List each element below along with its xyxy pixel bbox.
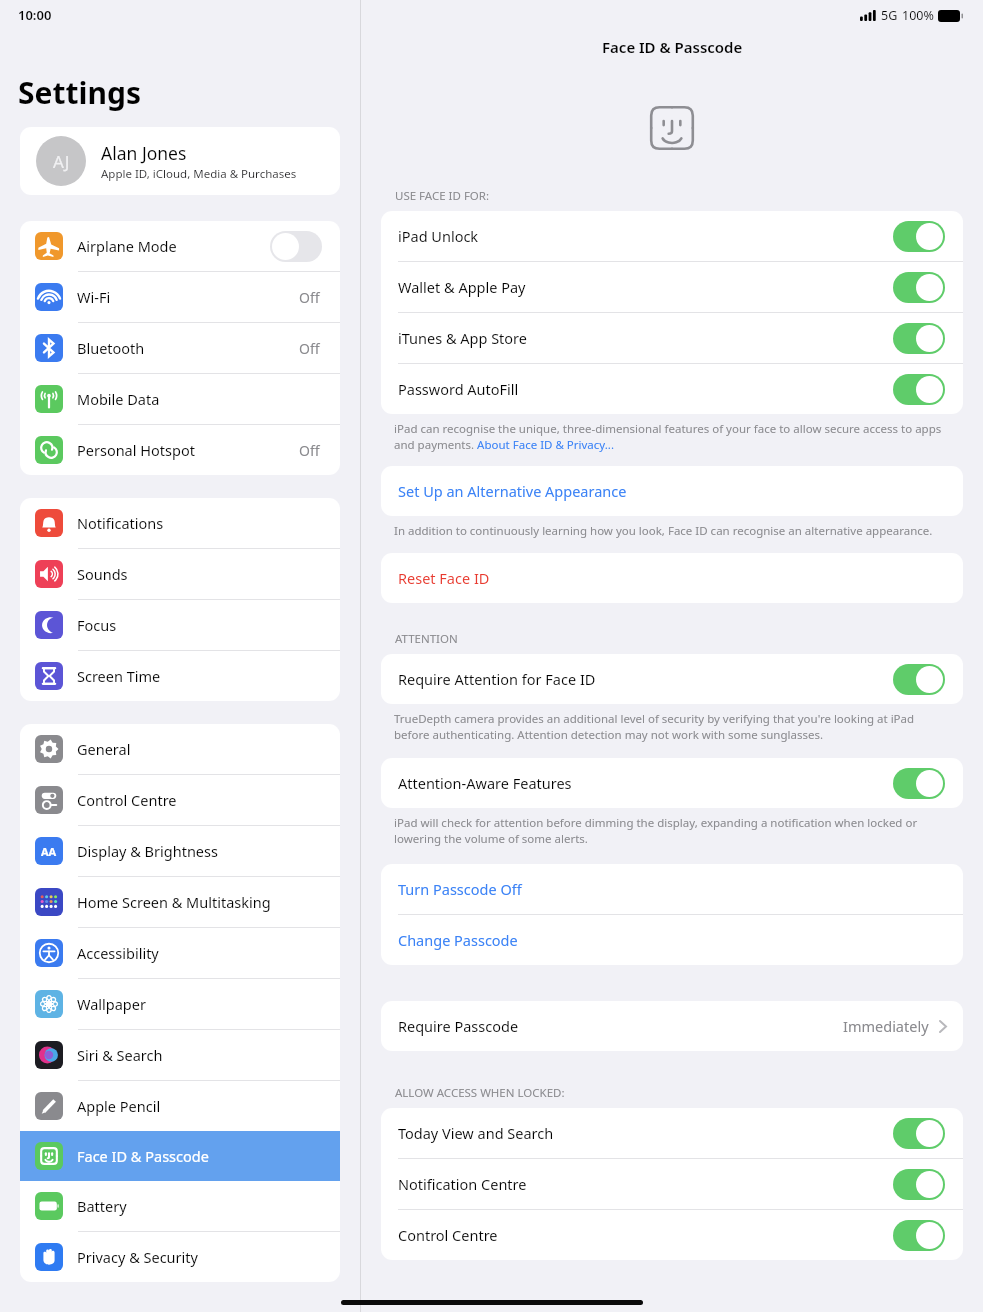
button[interactable]: General	[20, 724, 340, 774]
staticText: 10:00	[18, 6, 52, 24]
staticText: Sounds	[77, 564, 326, 584]
button[interactable]: On	[893, 323, 945, 354]
staticText: Face ID & Passcode	[602, 37, 743, 57]
staticText: iPad can recognise the unique, three-dim…	[394, 421, 943, 452]
staticText: Control Centre	[398, 1225, 893, 1245]
button[interactable]: Siri & Search	[20, 1030, 340, 1080]
staticText: Reset Face ID	[398, 568, 490, 588]
button[interactable]: Require Attention for Face ID	[381, 654, 963, 704]
button[interactable]: Today View and Search	[381, 1108, 963, 1158]
button[interactable]: On	[893, 1118, 945, 1149]
staticText: Display & Brightness	[77, 841, 326, 861]
staticText: Notification Centre	[398, 1174, 893, 1194]
staticText: Today View and Search	[398, 1123, 893, 1143]
staticText: Battery	[77, 1196, 326, 1216]
staticText: Settings	[18, 72, 141, 113]
staticText: iPad Unlock	[398, 226, 893, 246]
staticText: Wallpaper	[77, 994, 326, 1014]
button[interactable]: On	[893, 374, 945, 405]
button[interactable]: On	[893, 272, 945, 303]
staticText: Change Passcode	[398, 930, 518, 950]
button[interactable]: iPad Unlock	[381, 211, 963, 261]
button[interactable]: AJ	[20, 127, 340, 195]
button[interactable]: Notification Centre	[381, 1159, 963, 1209]
button[interactable]: Wi-Fi	[20, 272, 340, 322]
button[interactable]: Face ID & Passcode	[20, 1131, 340, 1181]
button[interactable]: Apple Pencil	[20, 1081, 340, 1131]
button[interactable]: Wallpaper	[20, 979, 340, 1029]
staticText: Require Attention for Face ID	[398, 669, 893, 689]
button[interactable]: Set Up an Alternative Appearance	[381, 466, 963, 516]
button[interactable]: Mobile Data	[20, 374, 340, 424]
button[interactable]: Home Screen & Multitasking	[20, 877, 340, 927]
staticText: Alan Jones	[101, 141, 187, 165]
button[interactable]: On	[893, 221, 945, 252]
staticText: Wallet & Apple Pay	[398, 277, 893, 297]
button[interactable]: On	[893, 768, 945, 799]
staticText: Wi-Fi	[77, 287, 299, 307]
button[interactable]: Attention-Aware Features	[381, 758, 963, 808]
staticText: In addition to continuously learning how…	[394, 523, 933, 539]
button[interactable]: Accessibility	[20, 928, 340, 978]
staticText: 5G	[881, 7, 898, 24]
button[interactable]: Password AutoFill	[381, 364, 963, 414]
staticText: Off	[299, 339, 320, 358]
button[interactable]: AA	[20, 826, 340, 876]
staticText: ATTENTION	[395, 631, 458, 647]
button[interactable]: Bluetooth	[20, 323, 340, 373]
button[interactable]: Turn Passcode Off	[381, 864, 963, 914]
button[interactable]: Reset Face ID	[381, 553, 963, 603]
staticText: USE FACE ID FOR:	[395, 188, 490, 204]
staticText: Off	[299, 288, 320, 307]
staticText: Attention-Aware Features	[398, 773, 893, 793]
button[interactable]: On	[893, 1169, 945, 1200]
staticText: Apple Pencil	[77, 1096, 326, 1116]
staticText: Siri & Search	[77, 1045, 326, 1065]
staticText: Apple ID, iCloud, Media & Purchases	[101, 166, 297, 182]
staticText: Home Screen & Multitasking	[77, 892, 326, 912]
button[interactable]: Notifications	[20, 498, 340, 548]
staticText: ALLOW ACCESS WHEN LOCKED:	[395, 1085, 565, 1101]
button[interactable]: Focus	[20, 600, 340, 650]
staticText: Bluetooth	[77, 338, 299, 358]
staticText: Accessibility	[77, 943, 326, 963]
staticText: Off	[299, 441, 320, 460]
staticText: Privacy & Security	[77, 1247, 326, 1267]
staticText: Control Centre	[77, 790, 326, 810]
staticText: iTunes & App Store	[398, 328, 893, 348]
button[interactable]: iTunes & App Store	[381, 313, 963, 363]
staticText: Require Passcode	[398, 1016, 843, 1036]
staticText: AJ	[53, 150, 70, 173]
staticText: 100%	[902, 7, 934, 24]
staticText: Notifications	[77, 513, 326, 533]
button[interactable]: Control Centre	[20, 775, 340, 825]
staticText: General	[77, 739, 326, 759]
button[interactable]: Sounds	[20, 549, 340, 599]
button[interactable]: Change Passcode	[381, 915, 963, 965]
button[interactable]: Wallet & Apple Pay	[381, 262, 963, 312]
button[interactable]: On	[893, 1220, 945, 1251]
button[interactable]: Off	[270, 231, 322, 262]
staticText: Mobile Data	[77, 389, 326, 409]
staticText: Turn Passcode Off	[398, 879, 522, 899]
button[interactable]: On	[893, 664, 945, 695]
button[interactable]: Require Passcode	[381, 1001, 963, 1051]
button[interactable]: Control Centre	[381, 1210, 963, 1260]
staticText: Airplane Mode	[77, 236, 270, 256]
button[interactable]: Personal Hotspot	[20, 425, 340, 475]
staticText: Personal Hotspot	[77, 440, 299, 460]
staticText: AA	[41, 844, 57, 859]
button[interactable]: Airplane Mode	[20, 221, 340, 271]
staticText: Screen Time	[77, 666, 326, 686]
button[interactable]: Battery	[20, 1181, 340, 1231]
staticText: Set Up an Alternative Appearance	[398, 481, 627, 501]
staticText: Focus	[77, 615, 326, 635]
staticText: iPad will check for attention before dim…	[394, 815, 943, 846]
staticText: Immediately	[843, 1016, 929, 1036]
staticText: Password AutoFill	[398, 379, 893, 399]
button[interactable]: Screen Time	[20, 651, 340, 701]
staticText: TrueDepth camera provides an additional …	[394, 711, 943, 742]
staticText: Face ID & Passcode	[77, 1146, 326, 1166]
button[interactable]: Privacy & Security	[20, 1232, 340, 1282]
